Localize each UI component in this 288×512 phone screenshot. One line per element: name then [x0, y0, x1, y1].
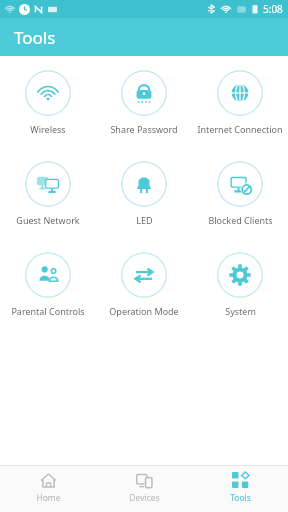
- button[interactable]: Guest Network: [0, 159, 96, 228]
- staticText: Internet Connection: [197, 123, 283, 135]
- button[interactable]: Operation Mode: [96, 250, 192, 319]
- button[interactable]: System: [192, 250, 288, 319]
- staticText: Devices: [129, 492, 160, 504]
- button[interactable]: Internet Connection: [192, 68, 288, 137]
- staticText: Home: [36, 492, 61, 504]
- staticText: Parental Controls: [11, 305, 85, 317]
- staticText: Tools: [14, 26, 56, 49]
- staticText: LED: [136, 214, 153, 226]
- staticText: Tools: [230, 492, 251, 504]
- button[interactable]: Tools: [192, 466, 288, 512]
- staticText: Share Password: [110, 123, 178, 135]
- staticText: 5:08: [263, 2, 283, 16]
- button[interactable]: Blocked Clients: [192, 159, 288, 228]
- button[interactable]: Parental Controls: [0, 250, 96, 319]
- staticText: Blocked Clients: [208, 214, 273, 226]
- staticText: Wireless: [30, 123, 66, 135]
- button[interactable]: LED: [96, 159, 192, 228]
- staticText: Operation Mode: [109, 305, 179, 317]
- button[interactable]: Share Password: [96, 68, 192, 137]
- staticText: System: [225, 305, 256, 317]
- button[interactable]: Wireless: [0, 68, 96, 137]
- button[interactable]: Home: [0, 466, 96, 512]
- staticText: Guest Network: [16, 214, 80, 226]
- button[interactable]: Devices: [96, 466, 192, 512]
